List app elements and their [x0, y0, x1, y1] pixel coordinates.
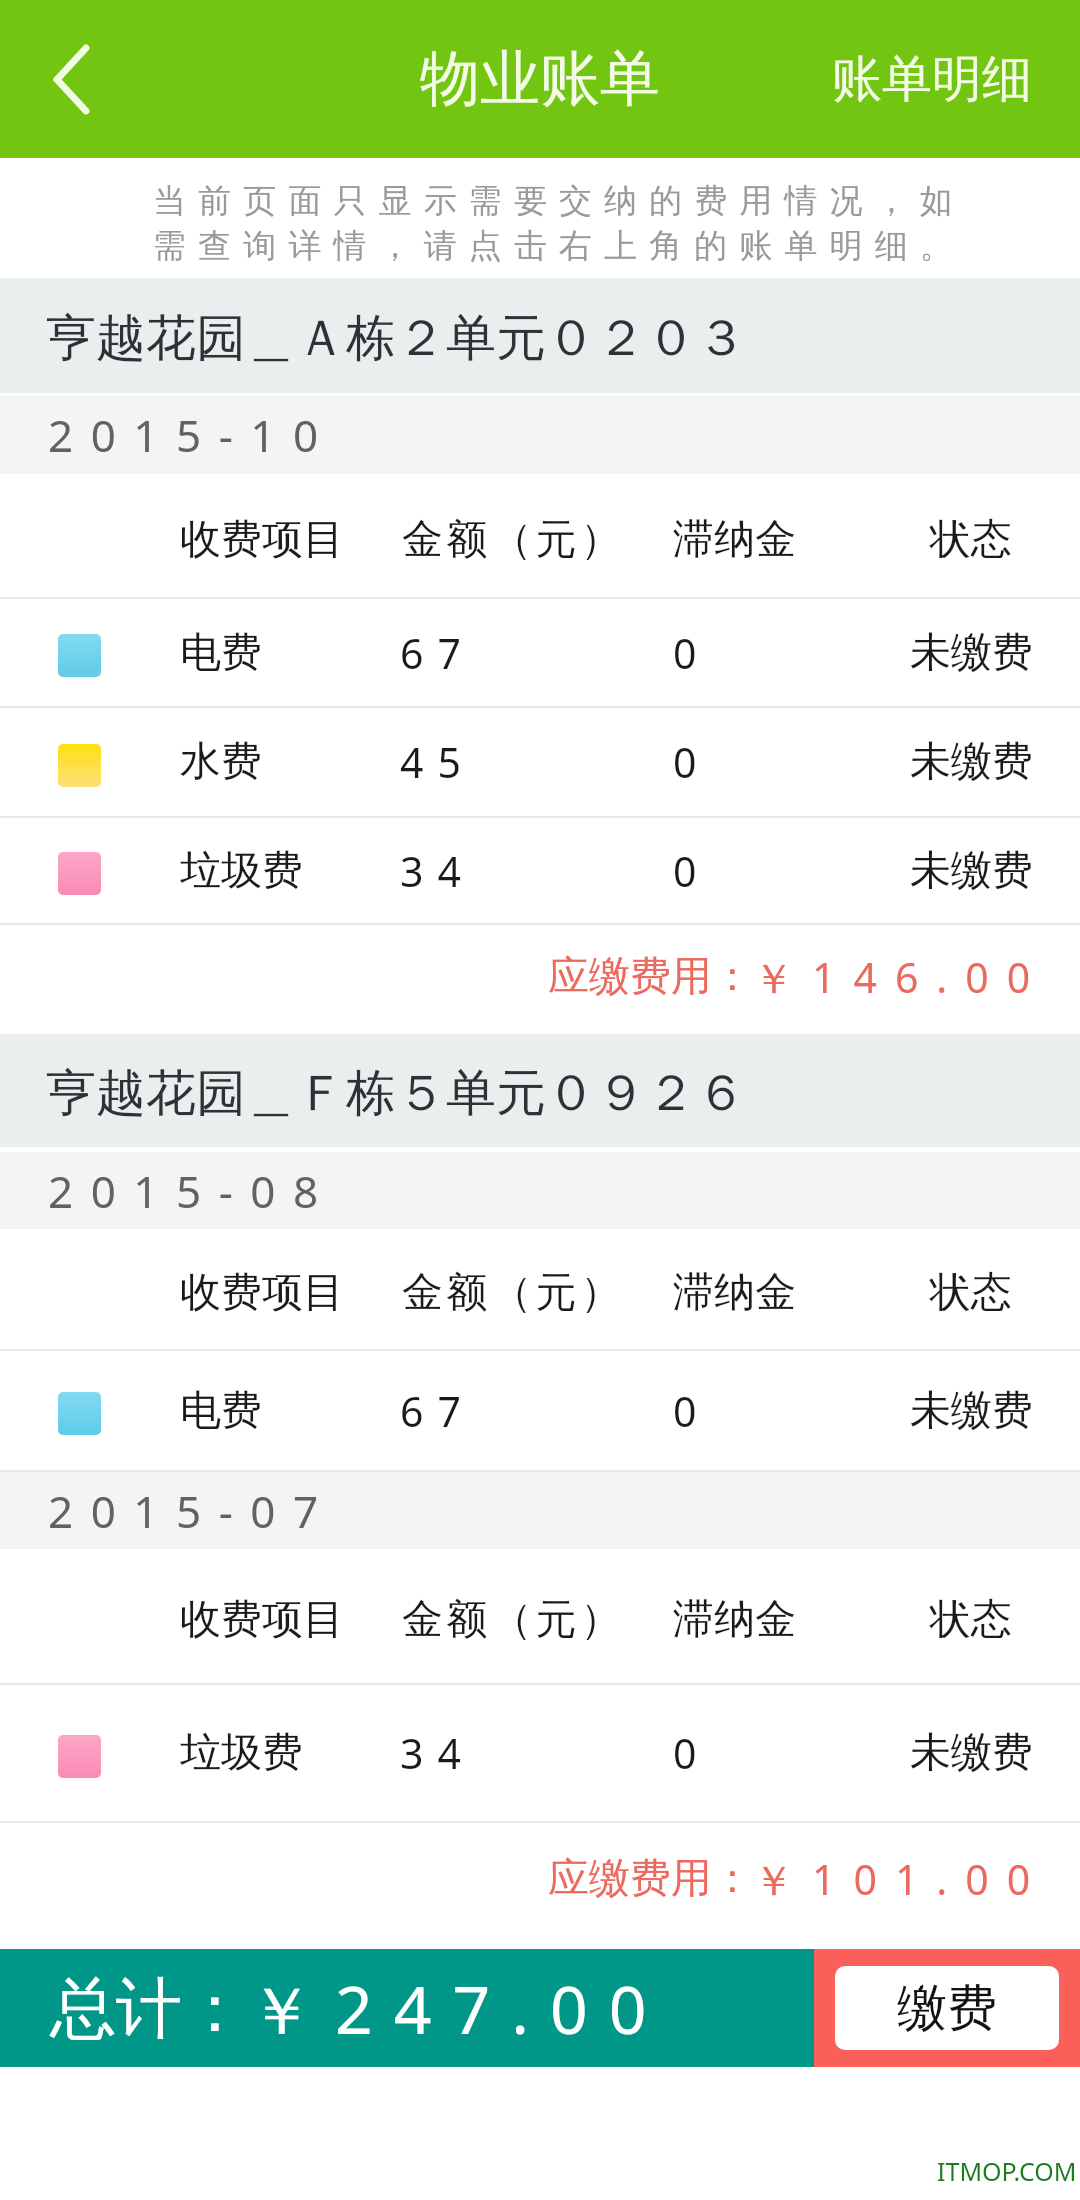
- staticText: 34: [400, 1725, 475, 1781]
- staticText: 未缴费: [910, 1727, 1033, 1779]
- staticText: 0: [673, 1725, 697, 1781]
- staticText: 67: [400, 1383, 475, 1439]
- staticText: ￥101.00: [753, 1851, 1049, 1907]
- staticText: 0: [673, 625, 697, 681]
- staticText: 电费: [180, 1385, 262, 1437]
- button[interactable]: 电费: [0, 599, 1080, 706]
- staticText: 账单明细: [832, 48, 1032, 111]
- staticText: 应缴费用：: [548, 1853, 753, 1905]
- staticText: 滞纳金: [673, 1594, 796, 1646]
- staticText: 状态: [930, 1594, 1012, 1646]
- staticText: 垃圾费: [180, 845, 303, 897]
- button[interactable]: 2015-08: [0, 1152, 1080, 1229]
- staticText: 金额（元）: [400, 1594, 623, 1646]
- staticText: 缴费: [897, 1977, 997, 2040]
- button[interactable]: 账单明细: [792, 0, 1080, 158]
- staticText: 亨越花园＿Ａ栋２单元０２０３: [46, 307, 746, 370]
- staticText: 亨越花园＿Ｆ栋５单元０９２６: [46, 1062, 746, 1125]
- staticText: ￥146.00: [753, 949, 1049, 1005]
- staticText: 当前页面只显示需要交纳的费用情况，如 需查询详情，请点击右上角的账单明细。: [153, 180, 965, 267]
- staticText: ITMOP.COM: [937, 2154, 1077, 2188]
- button[interactable]: 水费: [0, 708, 1080, 816]
- button[interactable]: 亨越花园＿Ｆ栋５单元０９２６: [0, 1034, 1080, 1147]
- staticText: 未缴费: [910, 1385, 1033, 1437]
- button[interactable]: 2015-10: [0, 396, 1080, 474]
- staticText: 金额（元）: [400, 514, 623, 566]
- button[interactable]: 2015-07: [0, 1472, 1080, 1549]
- button[interactable]: 垃圾费: [0, 818, 1080, 923]
- staticText: 收费项目: [180, 1267, 344, 1319]
- staticText: 2015-10: [48, 405, 336, 465]
- staticText: 应缴费用：: [548, 951, 753, 1003]
- staticText: 34: [400, 843, 475, 899]
- staticText: 总计：: [50, 1967, 248, 2050]
- staticText: 滞纳金: [673, 514, 796, 566]
- staticText: 未缴费: [910, 627, 1033, 679]
- staticText: 物业账单: [420, 41, 660, 117]
- staticText: 状态: [930, 514, 1012, 566]
- button[interactable]: 垃圾费: [0, 1685, 1080, 1821]
- staticText: 未缴费: [910, 845, 1033, 897]
- button[interactable]: 电费: [0, 1351, 1080, 1470]
- button[interactable]: Back: [0, 0, 150, 158]
- staticText: 45: [400, 734, 475, 790]
- staticText: 电费: [180, 627, 262, 679]
- staticText: ￥247.00: [248, 1963, 668, 2053]
- staticText: 0: [673, 843, 697, 899]
- button[interactable]: 缴费: [814, 1949, 1080, 2067]
- staticText: 未缴费: [910, 736, 1033, 788]
- staticText: 收费项目: [180, 514, 344, 566]
- staticText: 收费项目: [180, 1594, 344, 1646]
- staticText: 垃圾费: [180, 1727, 303, 1779]
- staticText: 水费: [180, 736, 262, 788]
- staticText: 2015-08: [48, 1161, 336, 1221]
- staticText: 2015-07: [48, 1481, 336, 1541]
- button[interactable]: 亨越花园＿Ａ栋２单元０２０３: [0, 278, 1080, 393]
- staticText: 0: [673, 1383, 697, 1439]
- staticText: 0: [673, 734, 697, 790]
- staticText: 金额（元）: [400, 1267, 623, 1319]
- staticText: 67: [400, 625, 475, 681]
- staticText: 滞纳金: [673, 1267, 796, 1319]
- staticText: 状态: [930, 1267, 1012, 1319]
